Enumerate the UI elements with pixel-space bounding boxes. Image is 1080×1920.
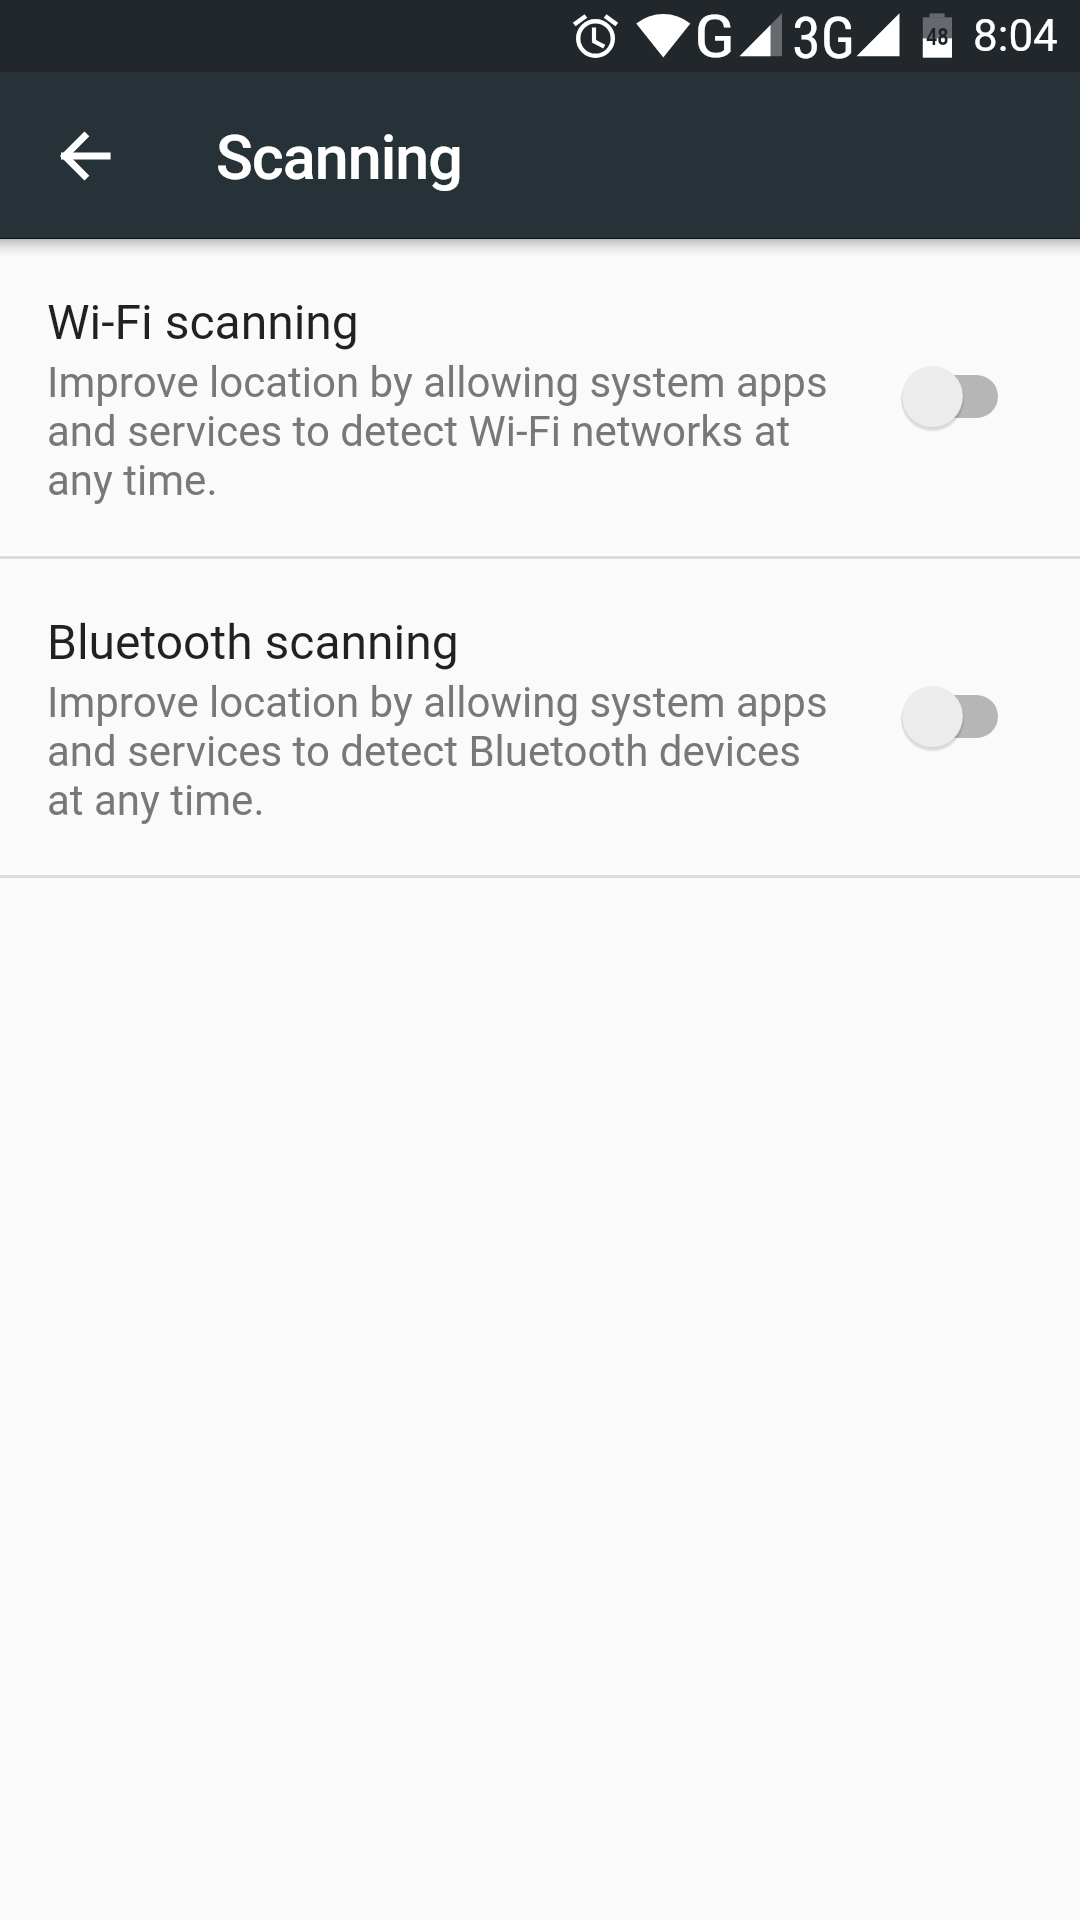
- button[interactable]: Wi-Fi scanning: [0, 240, 1080, 557]
- staticText: Wi-Fi scanning: [47, 295, 359, 351]
- button[interactable]: Toggle Wi-Fi scanning: [880, 365, 1010, 477]
- button[interactable]: Bluetooth scanning: [0, 560, 1080, 875]
- staticText: Improve location by allowing system apps…: [47, 358, 847, 505]
- staticText: 8:04: [973, 10, 1058, 62]
- button[interactable]: Navigate up: [14, 72, 158, 239]
- staticText: Bluetooth scanning: [47, 615, 459, 671]
- staticText: 48: [926, 24, 949, 51]
- staticText: Scanning: [216, 122, 462, 194]
- staticText: 3G: [792, 4, 855, 72]
- staticText: Improve location by allowing system apps…: [47, 678, 847, 825]
- button[interactable]: Toggle Bluetooth scanning: [880, 685, 1010, 797]
- staticText: G: [694, 1, 736, 71]
